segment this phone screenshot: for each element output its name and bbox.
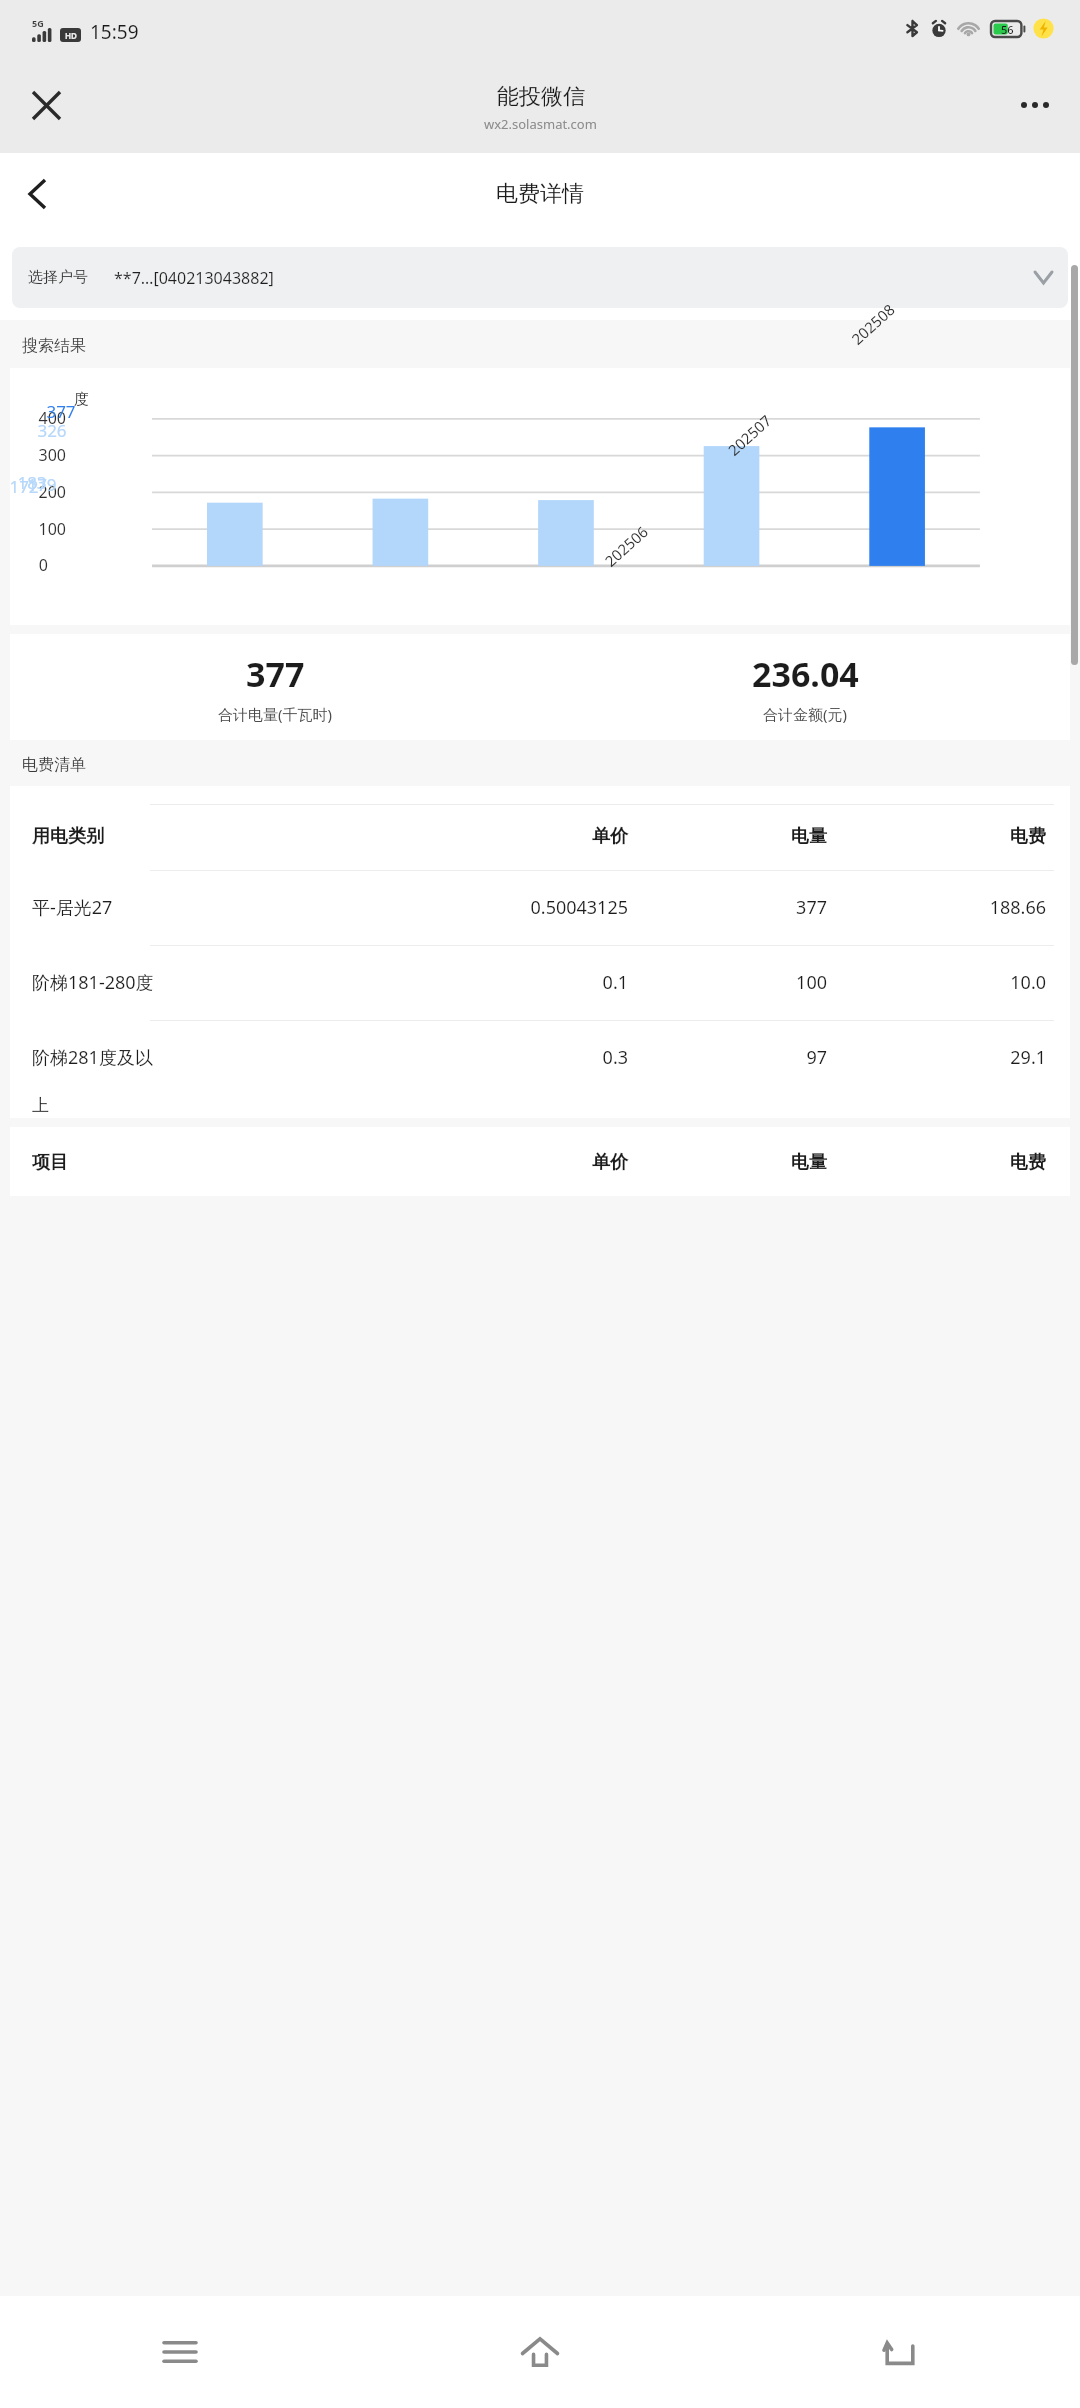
staticText: 电费 bbox=[827, 1151, 1046, 1174]
staticText: 0 bbox=[38, 554, 48, 576]
staticText: 合计金额(元) bbox=[763, 704, 848, 724]
staticText: 15:59 bbox=[90, 19, 139, 45]
staticText: 200 bbox=[38, 481, 66, 503]
staticText: 用电类别 bbox=[32, 825, 385, 848]
staticText: 100 bbox=[38, 518, 66, 540]
button[interactable]: More options bbox=[1002, 73, 1068, 137]
staticText: 202507 bbox=[724, 410, 776, 460]
staticText: 0.3 bbox=[385, 1045, 628, 1070]
staticText: 电费 bbox=[827, 825, 1046, 848]
staticText: 400 bbox=[38, 407, 66, 429]
button[interactable]: Close bbox=[14, 73, 78, 137]
staticText: 平-居光27 bbox=[32, 895, 385, 920]
staticText: 377 bbox=[46, 400, 76, 423]
button[interactable]: Recent apps bbox=[0, 2296, 360, 2408]
button[interactable]: Home bbox=[360, 2296, 720, 2408]
button[interactable]: 选择户号 bbox=[12, 247, 1068, 308]
staticText: 阶梯281度及以 bbox=[32, 1045, 385, 1070]
staticText: 202506 bbox=[600, 521, 652, 571]
staticText: 单价 bbox=[385, 825, 628, 848]
staticText: wx2.solasmat.com bbox=[484, 115, 597, 133]
staticText: 电费详情 bbox=[496, 180, 584, 208]
staticText: 100 bbox=[628, 970, 827, 995]
staticText: 阶梯181-280度 bbox=[32, 970, 385, 995]
staticText: 377 bbox=[628, 895, 827, 920]
staticText: 56 bbox=[1001, 22, 1014, 37]
staticText: 度 bbox=[74, 390, 89, 409]
staticText: 选择户号 bbox=[28, 268, 88, 287]
staticText: 项目 bbox=[32, 1151, 385, 1174]
staticText: 236.04 bbox=[752, 651, 859, 697]
staticText: 377 bbox=[246, 651, 305, 697]
staticText: 97 bbox=[628, 1045, 827, 1070]
staticText: 搜索结果 bbox=[22, 336, 86, 356]
staticText: 179 bbox=[27, 473, 57, 496]
staticText: 单价 bbox=[385, 1151, 628, 1174]
staticText: 电量 bbox=[628, 1151, 827, 1174]
staticText: 172 bbox=[9, 475, 39, 498]
button[interactable]: 377 bbox=[10, 651, 540, 724]
staticText: 合计电量(千瓦时) bbox=[218, 704, 333, 724]
staticText: **7…[040213043882] bbox=[114, 267, 274, 289]
staticText: HD bbox=[65, 30, 77, 41]
staticText: 29.1 bbox=[827, 1045, 1046, 1070]
button[interactable]: 阶梯181-280度 bbox=[10, 945, 1070, 1020]
staticText: 上 bbox=[32, 1095, 49, 1116]
staticText: 10.0 bbox=[827, 970, 1046, 995]
staticText: 电费清单 bbox=[22, 755, 86, 775]
button[interactable]: Back bbox=[4, 161, 70, 227]
button[interactable]: Back bbox=[720, 2296, 1080, 2408]
button[interactable]: 阶梯281度及以 bbox=[10, 1020, 1070, 1095]
button[interactable]: 平-居光27 bbox=[10, 870, 1070, 945]
staticText: 188.66 bbox=[827, 895, 1046, 920]
staticText: 电量 bbox=[628, 825, 827, 848]
staticText: 300 bbox=[38, 444, 66, 466]
staticText: 5G bbox=[32, 17, 44, 29]
staticText: 183 bbox=[17, 471, 47, 494]
staticText: 0.1 bbox=[385, 970, 628, 995]
staticText: 0.50043125 bbox=[385, 895, 628, 920]
staticText: 202508 bbox=[847, 299, 899, 349]
staticText: 326 bbox=[37, 419, 67, 442]
button[interactable]: 236.04 bbox=[540, 651, 1070, 724]
staticText: 能投微信 bbox=[497, 83, 585, 111]
